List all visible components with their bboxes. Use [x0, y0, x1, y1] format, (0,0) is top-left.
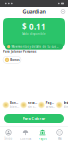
staticText: Bonos de [10, 101, 19, 105]
button[interactable]: Inicio [0, 128, 17, 141]
staticText: Bonos [10, 58, 19, 62]
staticText: Cuentas [20, 137, 31, 140]
staticText: bienvenida [10, 105, 19, 109]
staticText: $ 0.11 [22, 21, 46, 32]
staticText: Inicio [4, 137, 12, 140]
staticText: sin costo [28, 105, 36, 109]
staticText: Guardian [22, 8, 45, 15]
staticText: Envía [63, 101, 68, 105]
button[interactable]: Bonos de [2, 100, 20, 110]
staticText: Saldo disponible [22, 32, 46, 36]
staticText: servicios [46, 105, 54, 109]
button[interactable]: Movimientos y detalle de tu cuenta de ah… [5, 44, 63, 50]
button[interactable]: Pagos [34, 128, 51, 141]
staticText: Recarga [28, 101, 36, 105]
staticText: Para Cobrar [22, 116, 45, 121]
staticText: Movimientos y detalle de tu cuenta de ah… [11, 45, 60, 48]
staticText: Paga tus [46, 101, 54, 105]
button[interactable]: Más [51, 128, 68, 141]
button[interactable]: Profile [59, 7, 67, 16]
button[interactable]: Envía [56, 100, 68, 110]
button[interactable]: Recarga [20, 100, 37, 110]
staticText: Más [57, 137, 61, 140]
staticText: dinero [63, 105, 68, 109]
button[interactable]: Paga tus [38, 100, 55, 110]
staticText: Para Jalonar Personas [3, 50, 36, 53]
staticText: Pagos [38, 137, 46, 140]
button[interactable]: Cuentas [17, 128, 34, 141]
button[interactable]: Bonos [3, 56, 21, 63]
button[interactable]: Para Cobrar [4, 114, 64, 123]
